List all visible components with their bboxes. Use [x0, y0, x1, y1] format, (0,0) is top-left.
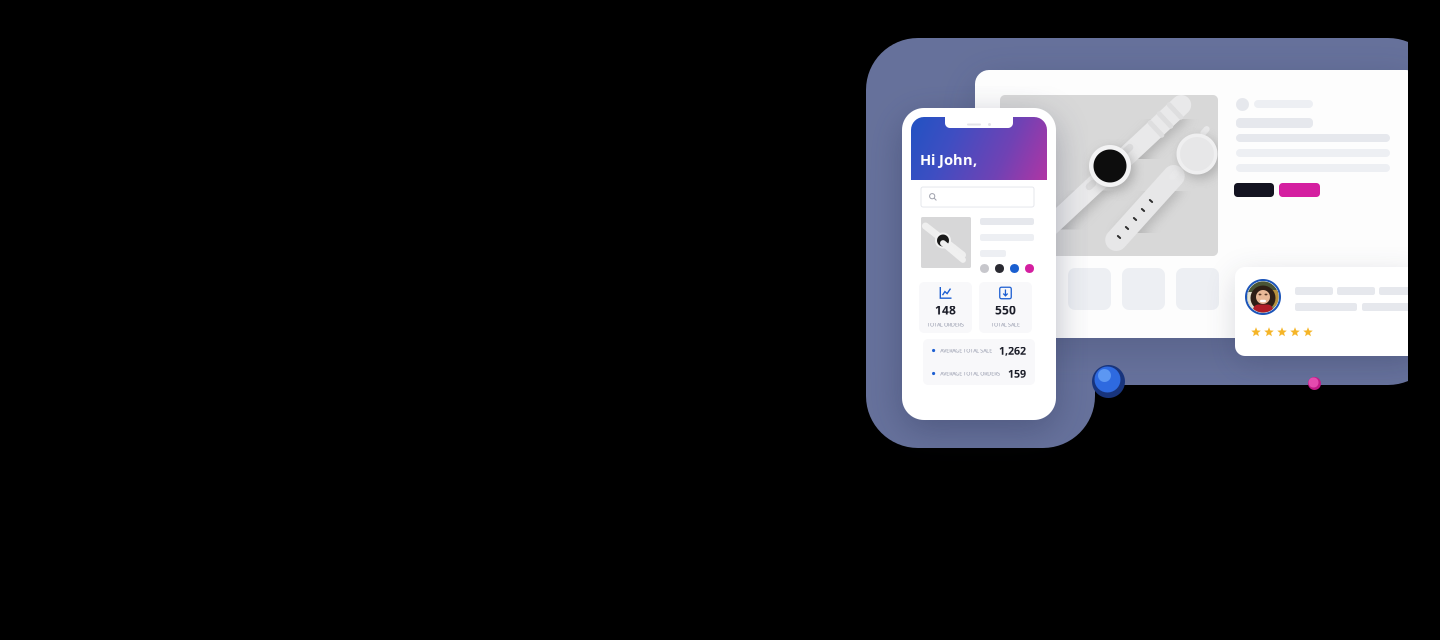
- button[interactable]: Add to cart: [1279, 183, 1320, 197]
- staticText: 159: [1008, 366, 1026, 381]
- staticText: AVERAGE TOTAL SALE: [940, 347, 992, 354]
- staticText: TOTAL SALE: [991, 321, 1020, 328]
- button[interactable]: Product photo 1: [1068, 268, 1111, 310]
- staticText: 148: [935, 302, 956, 318]
- staticText: Hi John,: [920, 149, 977, 169]
- staticText: AVERAGE TOTAL ORDERS: [940, 370, 1000, 377]
- button[interactable]: 550: [979, 282, 1032, 333]
- button[interactable]: AVERAGE TOTAL SALE: [923, 339, 1035, 362]
- staticText: 550: [995, 302, 1016, 318]
- button[interactable]: 148: [919, 282, 972, 333]
- button[interactable]: AVERAGE TOTAL ORDERS: [923, 362, 1035, 385]
- staticText: TOTAL ORDERS: [927, 321, 964, 328]
- button[interactable]: Buy now: [1234, 183, 1274, 197]
- staticText: 1,262: [999, 343, 1026, 358]
- button[interactable]: Search: [921, 187, 1034, 207]
